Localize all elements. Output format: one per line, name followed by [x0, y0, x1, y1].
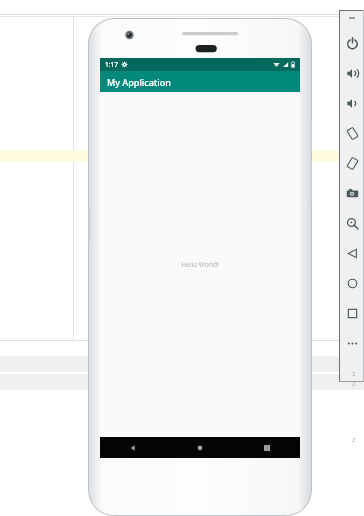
button[interactable]: Power [340, 28, 364, 58]
button[interactable]: Rotate right [340, 148, 364, 178]
button[interactable]: Home [166, 437, 233, 458]
button[interactable]: Back [100, 437, 166, 458]
button[interactable]: Zoom [340, 208, 364, 238]
button[interactable]: Home [340, 268, 364, 298]
button[interactable]: Volume up [340, 58, 364, 88]
button[interactable]: Recent apps [233, 437, 300, 458]
button[interactable]: More [340, 328, 364, 358]
button[interactable]: My Application [100, 71, 300, 92]
staticText: 1:17 [105, 60, 118, 69]
staticText: 2 [352, 436, 356, 444]
staticText: Hello World! [181, 260, 219, 269]
button[interactable]: Take screenshot [340, 178, 364, 208]
button[interactable]: Volume down [340, 88, 364, 118]
staticText: 2 [352, 370, 356, 378]
staticText: My Application [107, 76, 171, 88]
button[interactable]: Overview [340, 298, 364, 328]
button[interactable]: Back [340, 238, 364, 268]
button[interactable]: Rotate left [340, 118, 364, 148]
staticText: 2 [352, 380, 356, 388]
